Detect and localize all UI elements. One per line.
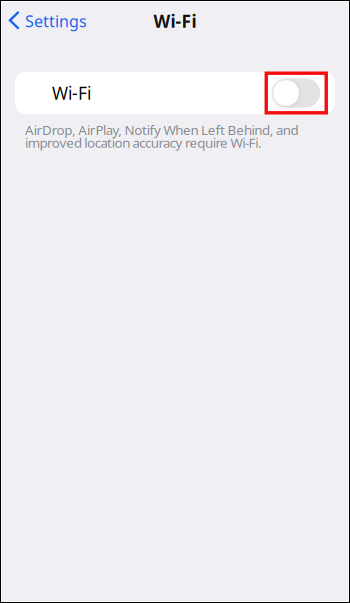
staticText: Settings [25,10,87,32]
staticText: Wi-Fi [52,81,91,104]
button[interactable]: Off [264,71,328,114]
staticText: AirDrop, AirPlay, Notify When Left Behin… [25,121,298,151]
staticText: Wi-Fi [153,9,196,32]
button[interactable]: Settings [0,4,95,38]
